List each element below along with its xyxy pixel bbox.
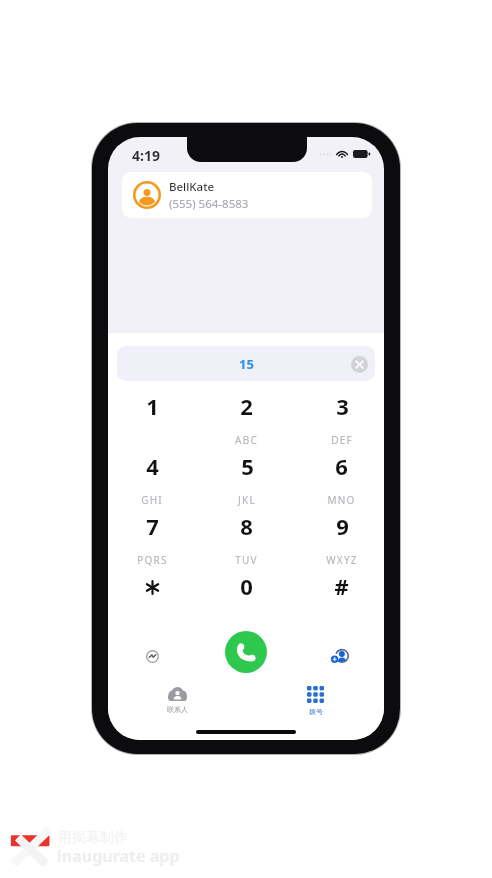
staticText: WXYZ <box>326 553 358 567</box>
staticText: MNO <box>327 493 356 507</box>
button[interactable]: 6 <box>294 451 384 511</box>
button[interactable]: Clear <box>350 355 368 373</box>
button[interactable]: 1 <box>108 391 199 451</box>
staticText: 用揭幕制作 <box>58 829 128 847</box>
staticText: # <box>334 571 349 601</box>
staticText: DEF <box>331 433 353 447</box>
button[interactable]: 7 <box>108 511 199 571</box>
button[interactable]: Messages <box>139 643 165 669</box>
staticText: inaugurate app <box>57 845 180 867</box>
button[interactable]: # <box>294 571 384 631</box>
staticText: 2 <box>240 391 253 421</box>
button[interactable]: 9 <box>294 511 384 571</box>
staticText: TUV <box>235 553 258 567</box>
button[interactable]: Call <box>225 631 267 673</box>
staticText: 8 <box>240 511 253 541</box>
staticText: BellKate <box>169 179 215 195</box>
button[interactable]: 0 <box>199 571 294 631</box>
staticText: 4 <box>146 451 159 481</box>
button[interactable]: 联系人 <box>108 686 246 720</box>
button[interactable]: 15 <box>117 346 375 381</box>
button[interactable]: BellKate <box>122 172 372 218</box>
staticText: 4:19 <box>132 146 160 165</box>
staticText: 3 <box>336 391 349 421</box>
staticText: ABC <box>235 433 258 447</box>
button[interactable]: 3 <box>294 391 384 451</box>
staticText: 15 <box>239 355 254 373</box>
button[interactable]: 8 <box>199 511 294 571</box>
staticText: 拨号 <box>309 707 323 716</box>
button[interactable]: 2 <box>199 391 294 451</box>
staticText: 联系人 <box>167 705 188 714</box>
button[interactable]: 5 <box>199 451 294 511</box>
staticText: GHI <box>141 493 163 507</box>
staticText: 9 <box>336 511 349 541</box>
staticText: (555) 564-8583 <box>169 196 249 212</box>
staticText: 1 <box>146 391 159 421</box>
staticText: 7 <box>146 511 159 541</box>
staticText: 6 <box>335 451 348 481</box>
button[interactable] <box>108 571 199 631</box>
button[interactable]: 拨号 <box>246 686 384 720</box>
staticText: PQRS <box>137 553 168 567</box>
staticText: JKL <box>238 493 256 507</box>
staticText: 5 <box>241 451 254 481</box>
button[interactable]: Add contact <box>326 643 352 669</box>
button[interactable]: 4 <box>108 451 199 511</box>
staticText: 0 <box>240 571 253 601</box>
